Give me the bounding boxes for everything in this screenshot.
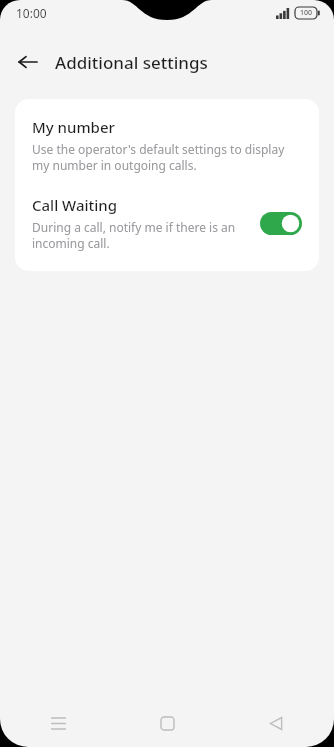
staticText: During a call, notify me if there is an … (32, 219, 250, 251)
staticText: Use the operator's default settings to d… (32, 141, 302, 173)
button[interactable]: Home (144, 700, 190, 746)
staticText: Call Waiting (32, 195, 118, 215)
button[interactable]: Back (8, 44, 48, 80)
button[interactable]: Back (253, 700, 299, 746)
staticText: 100 (300, 8, 313, 18)
button[interactable]: Call Waiting toggle (260, 212, 302, 235)
button[interactable]: Recent apps (35, 700, 81, 746)
staticText: Additional settings (55, 51, 208, 74)
staticText: My number (32, 117, 115, 137)
button[interactable]: My number (15, 117, 319, 173)
button[interactable]: Call Waiting (15, 195, 319, 251)
staticText: 10:00 (16, 5, 47, 21)
